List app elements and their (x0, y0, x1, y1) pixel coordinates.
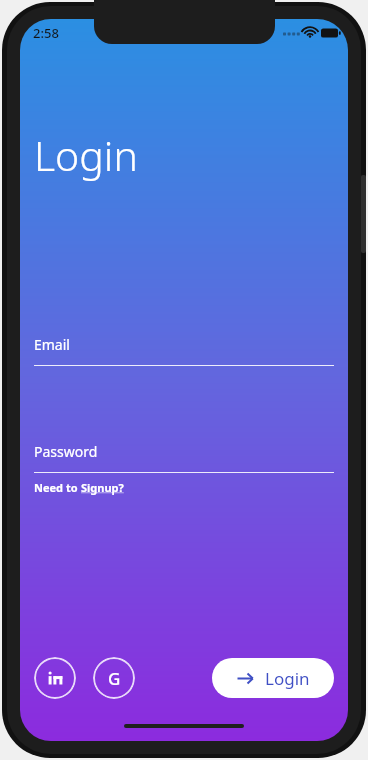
button[interactable]: Need to (34, 480, 124, 495)
staticText: G (108, 667, 121, 690)
staticText: Email (34, 335, 70, 354)
staticText: 2:58 (33, 24, 59, 42)
button[interactable]: Password (34, 442, 334, 473)
staticText: Login (34, 127, 138, 183)
staticText: Login (265, 667, 310, 690)
staticText: Signup? (81, 480, 124, 495)
staticText: Need to (34, 480, 81, 495)
button[interactable]: Sign in with LinkedIn (34, 657, 76, 699)
button[interactable]: Sign in with Google (93, 657, 135, 699)
staticText: Password (34, 442, 98, 461)
button[interactable]: Email (34, 335, 334, 366)
button[interactable]: Login (212, 658, 334, 698)
